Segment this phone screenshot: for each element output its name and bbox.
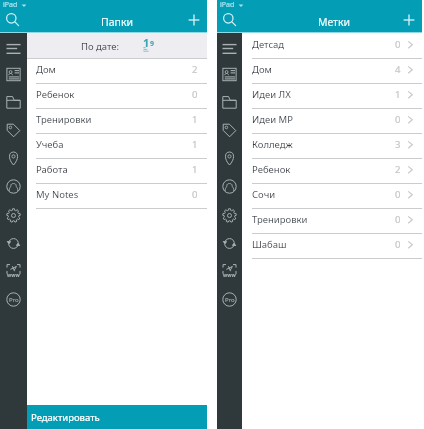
staticText: 1 — [143, 35, 150, 50]
button[interactable]: Сочи — [242, 184, 422, 209]
staticText: Тренировки — [36, 113, 92, 126]
button[interactable]: Search — [223, 13, 237, 27]
staticText: 9 — [150, 39, 153, 49]
button[interactable]: Places — [222, 151, 237, 166]
staticText: Идеи ЛХ — [252, 88, 291, 101]
staticText: Ребенок — [252, 163, 291, 176]
button[interactable]: Работа — [27, 159, 207, 184]
button[interactable]: Колледж — [242, 134, 422, 159]
staticText: Работа — [36, 163, 68, 176]
staticText: 2 — [395, 163, 401, 176]
staticText: 4 — [395, 63, 401, 76]
button[interactable]: Search — [6, 13, 20, 27]
staticText: Папки — [72, 15, 162, 29]
button[interactable]: Folders — [6, 95, 21, 110]
staticText: My Notes — [36, 188, 79, 201]
staticText: www — [223, 272, 236, 279]
staticText: Метки — [289, 15, 379, 29]
staticText: 3 — [395, 138, 401, 151]
staticText: Дом — [36, 63, 56, 76]
staticText: iPad — [220, 0, 235, 10]
staticText: 0 — [395, 188, 401, 201]
button[interactable]: My Notes — [27, 184, 207, 209]
button[interactable]: Ребенок — [242, 159, 422, 184]
button[interactable]: Notes — [6, 67, 21, 82]
button[interactable]: Account — [6, 179, 21, 194]
button[interactable]: Add — [402, 13, 416, 27]
button[interactable]: Sync — [6, 236, 21, 251]
button[interactable]: Тренировки — [242, 209, 422, 234]
button[interactable]: Menu — [6, 41, 21, 56]
staticText: 0 — [395, 213, 401, 226]
button[interactable]: Settings — [222, 208, 237, 223]
button[interactable]: Pro — [222, 292, 237, 307]
staticText: Редактировать — [31, 411, 100, 424]
button[interactable]: Tags — [222, 123, 237, 138]
staticText: 1 — [395, 88, 401, 101]
staticText: 0 — [192, 188, 198, 201]
staticText: 1 — [192, 138, 198, 151]
button[interactable]: Редактировать — [27, 405, 207, 429]
button[interactable]: Menu — [222, 41, 237, 56]
button[interactable]: Places — [6, 151, 21, 166]
button[interactable]: Шабаш — [242, 234, 422, 259]
staticText: Шабаш — [252, 238, 287, 251]
staticText: iPad — [3, 0, 18, 10]
staticText: 0 — [395, 38, 401, 51]
button[interactable]: Folders — [222, 95, 237, 110]
staticText: Pro — [9, 296, 19, 304]
staticText: 0 — [192, 88, 198, 101]
staticText: Дом — [252, 63, 272, 76]
staticText: Сочи — [252, 188, 276, 201]
staticText: По дате: — [81, 40, 120, 53]
staticText: Pro — [225, 296, 235, 304]
button[interactable]: Tags — [6, 123, 21, 138]
button[interactable]: Web — [6, 264, 21, 279]
button[interactable]: Тренировки — [27, 109, 207, 134]
button[interactable]: Учеба — [27, 134, 207, 159]
button[interactable]: Settings — [6, 208, 21, 223]
button[interactable]: Account — [222, 179, 237, 194]
button[interactable]: Sync — [222, 236, 237, 251]
button[interactable]: Add — [187, 13, 201, 27]
button[interactable]: Идеи МР — [242, 109, 422, 134]
staticText: Идеи МР — [252, 113, 293, 126]
button[interactable]: Детсад — [242, 34, 422, 59]
button[interactable]: Web — [222, 264, 237, 279]
staticText: 1 — [192, 113, 198, 126]
staticText: 0 — [395, 238, 401, 251]
button[interactable]: Ребенок — [27, 84, 207, 109]
button[interactable]: Дом — [27, 59, 207, 84]
button[interactable]: Notes — [222, 67, 237, 82]
staticText: Детсад — [252, 38, 285, 51]
button[interactable]: Pro — [6, 292, 21, 307]
button[interactable]: Дом — [242, 59, 422, 84]
staticText: Колледж — [252, 138, 293, 151]
button[interactable]: Идеи ЛХ — [242, 84, 422, 109]
staticText: 1 — [192, 163, 198, 176]
staticText: Учеба — [36, 138, 64, 151]
staticText: 2 — [192, 63, 198, 76]
staticText: Тренировки — [252, 213, 308, 226]
staticText: 0 — [395, 113, 401, 126]
staticText: Ребенок — [36, 88, 75, 101]
staticText: www — [7, 272, 20, 279]
button[interactable]: Sort order — [143, 37, 153, 54]
